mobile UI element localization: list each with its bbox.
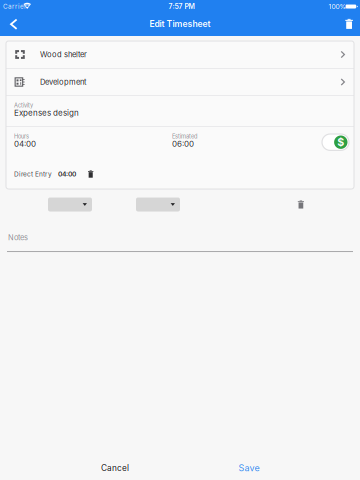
staticText: Direct Entry (14, 170, 52, 178)
button[interactable]: Cancel (84, 457, 146, 479)
staticText: Notes (8, 233, 28, 242)
staticText: Development (40, 77, 86, 87)
staticText: Activity (14, 102, 33, 109)
staticText: 04:00 (14, 139, 36, 149)
staticText: Estimated (172, 133, 198, 140)
staticText: Cancel (101, 463, 129, 473)
staticText: 04:00 (58, 170, 76, 178)
button[interactable]: Select end time (136, 197, 180, 211)
staticText: 100% (329, 2, 347, 11)
button[interactable]: Billable (322, 133, 354, 150)
button[interactable]: Select start time (48, 197, 92, 211)
button[interactable]: Development (6, 69, 354, 95)
staticText: Carrier (3, 3, 26, 10)
staticText: Save (238, 462, 259, 473)
staticText: Edit Timesheet (149, 19, 210, 29)
staticText: Expenses design (14, 108, 79, 118)
button[interactable]: Delete time range (292, 194, 310, 214)
button[interactable]: Save (218, 457, 280, 479)
staticText: Hours (14, 133, 29, 140)
button[interactable]: Delete timesheet (337, 15, 360, 36)
staticText: Wood shelter (40, 50, 87, 59)
staticText: 06:00 (172, 139, 194, 149)
button[interactable]: Delete direct entry (76, 167, 97, 181)
button[interactable]: Back (0, 15, 27, 36)
button[interactable]: Wood shelter (6, 41, 354, 68)
staticText: $ (337, 136, 344, 149)
staticText: 7:57 PM (168, 2, 194, 11)
